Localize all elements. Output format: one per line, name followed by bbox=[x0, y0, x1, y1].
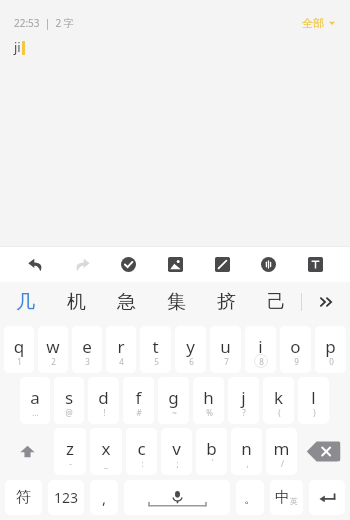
button[interactable]: Backspace bbox=[302, 429, 345, 474]
button[interactable]: l bbox=[298, 377, 329, 424]
button[interactable]: q bbox=[4, 326, 34, 373]
button[interactable]: r bbox=[106, 326, 136, 373]
button[interactable]: Insert image bbox=[160, 249, 190, 279]
button[interactable]: 急 bbox=[101, 282, 151, 322]
button[interactable]: z bbox=[54, 428, 86, 475]
button[interactable]: 几 bbox=[0, 282, 51, 322]
button[interactable]: v bbox=[161, 428, 192, 475]
staticText: a bbox=[20, 386, 50, 409]
button[interactable]: h bbox=[193, 377, 224, 424]
button[interactable]: , bbox=[90, 480, 118, 515]
staticText: u bbox=[210, 335, 241, 358]
button[interactable]: 己 bbox=[251, 282, 301, 322]
button[interactable]: Shift bbox=[2, 426, 52, 477]
staticText: w bbox=[38, 335, 68, 358]
staticText: 英 bbox=[290, 496, 298, 506]
staticText: x bbox=[90, 437, 122, 460]
button[interactable]: j bbox=[228, 377, 259, 424]
staticText: y bbox=[175, 335, 206, 358]
staticText: 全部 bbox=[302, 16, 324, 30]
button[interactable]: 全部 bbox=[298, 14, 340, 32]
button[interactable]: 挤 bbox=[201, 282, 251, 322]
staticText: , bbox=[102, 488, 107, 508]
button[interactable]: s bbox=[54, 377, 84, 424]
staticText: 急 bbox=[117, 290, 136, 314]
staticText: ` bbox=[211, 458, 214, 469]
staticText: 挤 bbox=[217, 290, 236, 314]
button[interactable]: 集 bbox=[151, 282, 201, 322]
button[interactable]: Checklist bbox=[113, 249, 143, 279]
staticText: h bbox=[193, 386, 224, 409]
staticText: s bbox=[54, 386, 84, 409]
button[interactable]: e bbox=[72, 326, 102, 373]
staticText: / bbox=[281, 458, 284, 469]
button[interactable]: d bbox=[88, 377, 119, 424]
staticText: k bbox=[263, 386, 294, 409]
button[interactable]: More candidates bbox=[302, 282, 350, 322]
staticText: 几 bbox=[16, 290, 35, 314]
button[interactable]: b bbox=[196, 428, 227, 475]
button[interactable]: m bbox=[266, 428, 297, 475]
staticText: ) bbox=[313, 407, 316, 418]
staticText: f bbox=[123, 386, 154, 409]
staticText: z bbox=[54, 437, 86, 460]
staticText: 8 bbox=[259, 356, 264, 367]
staticText: 集 bbox=[167, 290, 186, 314]
staticText: 己 bbox=[267, 290, 286, 314]
staticText: t bbox=[140, 335, 171, 358]
staticText: i bbox=[245, 335, 276, 358]
staticText: j bbox=[228, 386, 259, 409]
button[interactable]: t bbox=[140, 326, 171, 373]
button[interactable]: Space bbox=[124, 480, 230, 515]
button[interactable]: Draw bbox=[207, 249, 237, 279]
staticText: 22:53 | 2 字 bbox=[14, 16, 74, 30]
button[interactable]: 123 bbox=[48, 480, 84, 515]
staticText: ( bbox=[278, 407, 281, 418]
button[interactable]: Undo bbox=[20, 249, 50, 279]
button[interactable]: o bbox=[280, 326, 311, 373]
staticText: ~ bbox=[172, 407, 177, 418]
staticText: # bbox=[136, 407, 142, 418]
button[interactable]: c bbox=[126, 428, 157, 475]
staticText: g bbox=[158, 386, 189, 409]
staticText: 1 bbox=[17, 356, 22, 367]
button[interactable]: Redo bbox=[67, 249, 97, 279]
button[interactable]: x bbox=[90, 428, 122, 475]
staticText: ! bbox=[103, 407, 106, 418]
button[interactable]: u bbox=[210, 326, 241, 373]
staticText: m bbox=[266, 437, 297, 460]
staticText: r bbox=[106, 335, 136, 358]
staticText: @ bbox=[65, 407, 73, 418]
staticText: q bbox=[4, 335, 34, 358]
staticText: n bbox=[231, 437, 262, 460]
staticText: ji bbox=[14, 38, 21, 56]
staticText: : bbox=[141, 458, 144, 469]
button[interactable]: f bbox=[123, 377, 154, 424]
staticText: 5 bbox=[154, 356, 159, 367]
button[interactable]: 机 bbox=[51, 282, 101, 322]
button[interactable]: 符 bbox=[5, 480, 42, 515]
button[interactable]: Enter bbox=[309, 480, 345, 515]
button[interactable]: Text format bbox=[300, 249, 330, 279]
staticText: b bbox=[196, 437, 227, 460]
staticText: % bbox=[206, 407, 213, 418]
staticText: 2 bbox=[51, 356, 56, 367]
staticText: p bbox=[315, 335, 346, 358]
button[interactable]: 。 bbox=[236, 480, 264, 515]
staticText: 0 bbox=[329, 356, 334, 367]
button[interactable]: a bbox=[20, 377, 50, 424]
button[interactable]: g bbox=[158, 377, 189, 424]
staticText: l bbox=[298, 386, 329, 409]
button[interactable]: Record audio bbox=[253, 249, 283, 279]
button[interactable]: Switch language bbox=[270, 480, 303, 515]
button[interactable]: i bbox=[245, 326, 276, 373]
button[interactable]: k bbox=[263, 377, 294, 424]
button[interactable]: y bbox=[175, 326, 206, 373]
staticText: e bbox=[72, 335, 102, 358]
button[interactable]: n bbox=[231, 428, 262, 475]
button[interactable]: w bbox=[38, 326, 68, 373]
button[interactable]: p bbox=[315, 326, 346, 373]
staticText: _ bbox=[104, 458, 108, 469]
staticText: ? bbox=[242, 407, 246, 418]
staticText: 。 bbox=[244, 490, 257, 506]
